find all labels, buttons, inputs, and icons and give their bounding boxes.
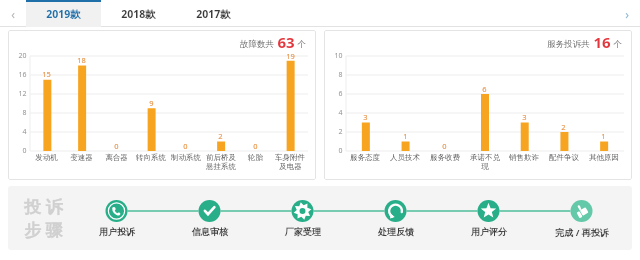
staticText: 0 <box>22 146 27 156</box>
staticText: 变速器 <box>70 153 93 162</box>
staticText: ‹ <box>11 6 15 22</box>
button[interactable]: 上一页 <box>0 0 26 27</box>
staticText: 信息审核 <box>192 226 228 237</box>
staticText: 处理反馈 <box>378 226 414 237</box>
staticText: 服务投诉共 <box>547 39 590 50</box>
staticText: 8 <box>22 108 27 118</box>
staticText: 个 <box>297 39 306 50</box>
staticText: 2 <box>561 122 566 132</box>
staticText: 16 <box>18 70 27 80</box>
button[interactable]: 用户投诉 <box>70 186 163 250</box>
staticText: 15 <box>42 69 51 79</box>
staticText: 20 <box>18 51 27 61</box>
staticText: 服务态度 <box>350 153 380 162</box>
staticText: › <box>625 6 629 22</box>
staticText: 2018款 <box>121 7 156 21</box>
staticText: 人员技术 <box>390 153 420 162</box>
button[interactable]: 下一页 <box>614 0 640 27</box>
staticText: 车身附件 <box>275 153 305 162</box>
staticText: 转向系统 <box>136 153 166 162</box>
staticText: 厂家受理 <box>285 226 321 237</box>
staticText: 6 <box>482 84 487 94</box>
staticText: 0 <box>183 141 188 151</box>
staticText: 步 骤 <box>24 218 63 241</box>
staticText: 制动系统 <box>171 153 201 162</box>
staticText: 1 <box>601 131 606 141</box>
staticText: 及电器 <box>279 162 302 171</box>
button[interactable]: 信息审核 <box>163 186 256 250</box>
staticText: 4 <box>338 108 343 118</box>
staticText: 个 <box>613 39 622 50</box>
button[interactable]: 厂家受理 <box>256 186 349 250</box>
staticText: 2 <box>338 127 343 137</box>
staticText: 承诺不兑 <box>470 153 500 162</box>
staticText: 销售欺诈 <box>509 153 539 162</box>
staticText: 9 <box>149 98 154 108</box>
staticText: 2017款 <box>196 7 231 21</box>
button[interactable]: 完成 / 再投诉 <box>535 186 628 250</box>
staticText: 发动机 <box>35 153 58 162</box>
staticText: 10 <box>334 51 343 61</box>
staticText: 0 <box>253 141 258 151</box>
button[interactable]: 2019款 <box>26 0 101 27</box>
staticText: 故障数共 <box>240 39 274 50</box>
staticText: 2019款 <box>46 7 81 21</box>
staticText: 1 <box>403 131 408 141</box>
staticText: 服务收费 <box>430 153 460 162</box>
staticText: 其他原因 <box>589 153 619 162</box>
staticText: 轮胎 <box>248 153 263 162</box>
staticText: 完成 / 再投诉 <box>555 226 609 238</box>
staticText: 2 <box>218 131 223 141</box>
staticText: 12 <box>18 89 27 99</box>
staticText: 悬挂系统 <box>206 162 236 171</box>
button[interactable]: 处理反馈 <box>349 186 442 250</box>
staticText: 3 <box>363 112 368 122</box>
staticText: 用户投诉 <box>99 226 135 237</box>
staticText: 3 <box>522 112 527 122</box>
staticText: 19 <box>286 51 295 61</box>
staticText: 用户评分 <box>471 226 507 237</box>
staticText: 63 <box>277 32 295 52</box>
staticText: 投 诉 <box>24 195 63 218</box>
button[interactable]: 用户评分 <box>442 186 535 250</box>
staticText: 现 <box>481 162 489 171</box>
staticText: 0 <box>338 146 343 156</box>
staticText: 8 <box>338 70 343 80</box>
button[interactable]: 2018款 <box>101 0 176 27</box>
staticText: 离合器 <box>105 153 128 162</box>
staticText: 16 <box>593 32 611 52</box>
staticText: 0 <box>442 141 447 151</box>
staticText: 前后桥及 <box>206 153 236 162</box>
staticText: 18 <box>77 55 86 65</box>
staticText: 6 <box>338 89 343 99</box>
staticText: 0 <box>114 141 119 151</box>
staticText: 配件争议 <box>549 153 579 162</box>
staticText: 4 <box>22 127 27 137</box>
button[interactable]: 2017款 <box>176 0 251 27</box>
